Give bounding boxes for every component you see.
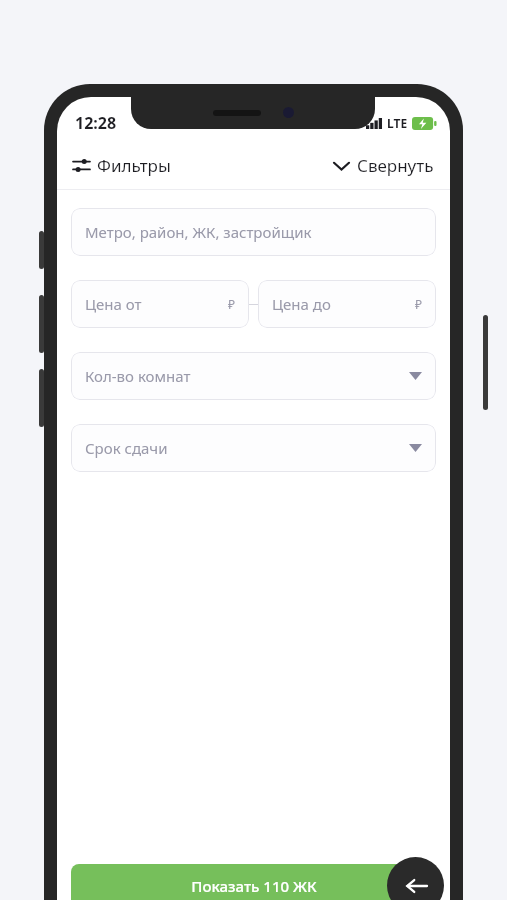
staticText: Срок сдачи: [85, 438, 168, 458]
button[interactable]: Свернуть: [332, 150, 436, 181]
button[interactable]: Цена от: [71, 280, 249, 328]
button[interactable]: Метро, район, ЖК, застройщик: [71, 208, 436, 256]
button[interactable]: Показать 110 ЖК: [71, 864, 437, 900]
staticText: Цена от: [85, 294, 142, 314]
staticText: Фильтры: [97, 154, 171, 177]
staticText: Метро, район, ЖК, застройщик: [85, 222, 312, 242]
staticText: ₽: [228, 296, 235, 312]
staticText: LTE: [387, 115, 408, 131]
staticText: ₽: [415, 296, 422, 312]
button[interactable]: Кол-во комнат: [71, 352, 436, 400]
staticText: 12:28: [75, 112, 117, 134]
staticText: Кол-во комнат: [85, 366, 191, 386]
staticText: Показать 110 ЖК: [191, 876, 317, 896]
button[interactable]: Фильтры: [71, 150, 173, 181]
button[interactable]: Срок сдачи: [71, 424, 436, 472]
staticText: Цена до: [272, 294, 331, 314]
button[interactable]: Цена до: [258, 280, 436, 328]
button[interactable]: Back: [387, 857, 444, 900]
staticText: Свернуть: [357, 154, 434, 177]
